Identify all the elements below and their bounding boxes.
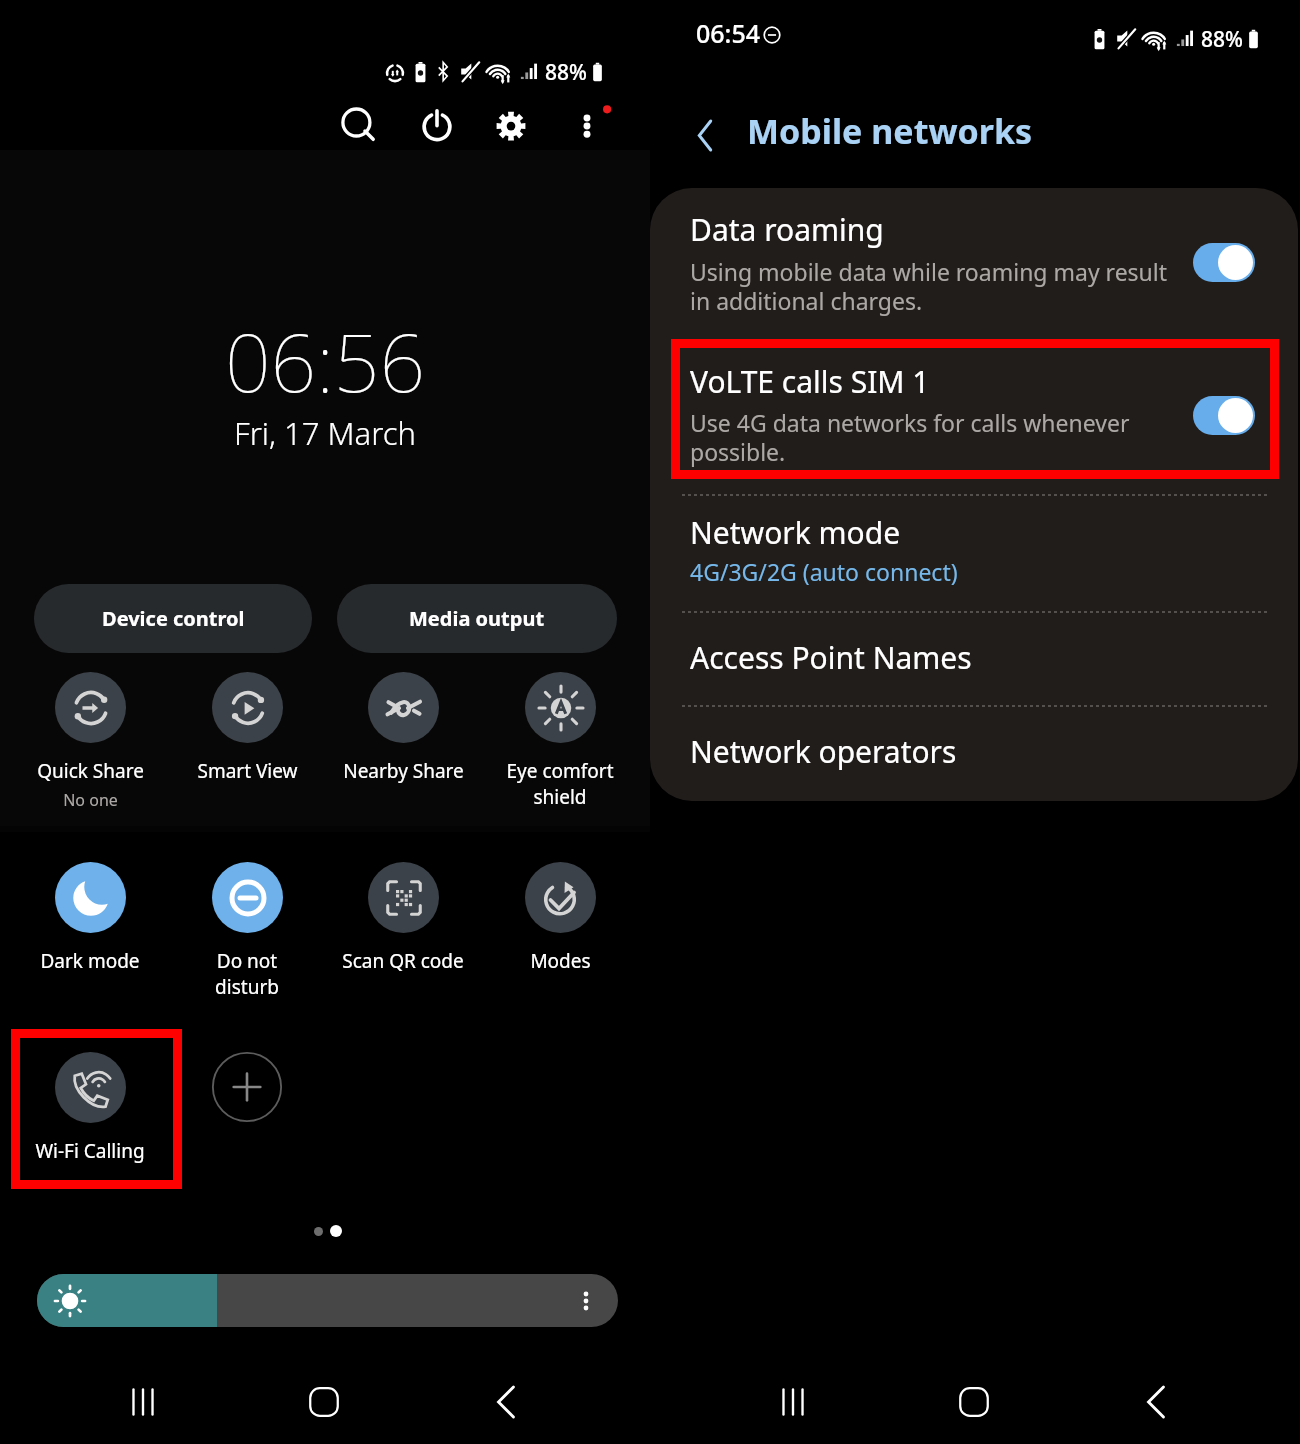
button[interactable]: Access Point Names xyxy=(650,612,1298,705)
button[interactable]: Media output xyxy=(337,584,617,653)
staticText: Use 4G data networks for calls whenever … xyxy=(690,407,1130,468)
staticText: Eye comfort shield xyxy=(506,758,614,809)
button[interactable]: Data roaming xyxy=(650,188,1298,339)
button[interactable]: Eye comfort shield xyxy=(482,672,638,809)
button[interactable]: Network operators xyxy=(650,706,1298,801)
staticText: Dark mode xyxy=(40,948,140,974)
button[interactable]: More options xyxy=(557,100,617,160)
staticText: Scan QR code xyxy=(342,948,464,974)
staticText: Nearby Share xyxy=(343,758,464,784)
button[interactable]: VoLTE calls SIM 1 xyxy=(650,339,1298,494)
staticText: Access Point Names xyxy=(690,637,972,678)
button[interactable]: Nearby Share xyxy=(325,672,481,784)
button[interactable]: Device control xyxy=(34,584,312,653)
button[interactable]: Wi-Fi Calling xyxy=(12,1052,168,1164)
staticText: Device control xyxy=(102,605,245,632)
button[interactable]: Back xyxy=(471,1367,541,1437)
staticText: 4G/3G/2G (auto connect) xyxy=(690,556,958,587)
staticText: Wi-Fi Calling xyxy=(35,1138,145,1164)
button[interactable]: Back xyxy=(1121,1367,1191,1437)
button[interactable]: Dark mode xyxy=(12,862,168,974)
button[interactable]: Do not disturb xyxy=(169,862,325,999)
staticText: 88% xyxy=(1201,25,1243,54)
staticText: VoLTE calls SIM 1 xyxy=(690,361,930,402)
staticText: 06:54 xyxy=(696,16,761,50)
staticText: No one xyxy=(63,789,118,811)
button[interactable]: Recent apps xyxy=(758,1367,828,1437)
staticText: 06:56 xyxy=(225,306,425,415)
staticText: Media output xyxy=(409,605,545,632)
button[interactable]: Scan QR code xyxy=(325,862,481,974)
staticText: Data roaming xyxy=(690,209,884,250)
staticText: Do not disturb xyxy=(215,948,279,999)
button[interactable]: Brightness xyxy=(37,1274,618,1327)
staticText: Network operators xyxy=(690,731,957,772)
button[interactable]: Search xyxy=(330,100,390,160)
staticText: Using mobile data while roaming may resu… xyxy=(690,256,1168,317)
staticText: Mobile networks xyxy=(747,108,1033,154)
staticText: Modes xyxy=(530,948,591,974)
button[interactable]: Settings xyxy=(481,100,541,160)
button[interactable]: Recent apps xyxy=(108,1367,178,1437)
button[interactable]: Smart View xyxy=(169,672,325,784)
staticText: Fri, 17 March xyxy=(234,412,417,454)
button[interactable]: Home xyxy=(939,1367,1009,1437)
staticText: Smart View xyxy=(197,758,298,784)
staticText: Network mode xyxy=(690,512,901,553)
button[interactable]: Back xyxy=(677,106,735,164)
staticText: 88% xyxy=(545,58,587,87)
button[interactable]: Home xyxy=(289,1367,359,1437)
button[interactable]: Power xyxy=(407,100,467,160)
button[interactable]: Toggle on xyxy=(1193,243,1255,282)
button[interactable]: Network mode xyxy=(650,495,1298,611)
button[interactable]: Toggle on xyxy=(1193,396,1255,435)
button[interactable]: Add tile xyxy=(211,1051,283,1123)
button[interactable]: Modes xyxy=(482,862,638,974)
staticText: Quick Share xyxy=(37,758,144,784)
button[interactable]: Quick Share xyxy=(12,672,168,811)
